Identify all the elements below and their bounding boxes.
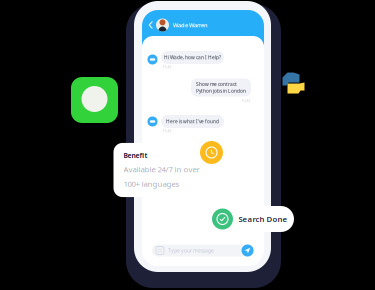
staticText: Show me contract Python jobs in London [196, 81, 246, 94]
staticText: Wade Warren [173, 21, 208, 29]
staticText: Search Done [238, 214, 287, 224]
staticText: 15:42 [162, 129, 171, 133]
button[interactable]: Send [241, 244, 253, 256]
staticText: Type your message [168, 247, 214, 254]
button[interactable]: Search Done [209, 206, 294, 232]
staticText: Here is what I've found [166, 118, 219, 125]
staticText: 15:42 [162, 65, 171, 69]
button[interactable]: Back [147, 20, 155, 30]
staticText: 15:42 [241, 98, 250, 103]
staticText: Benefit [123, 151, 147, 160]
staticText: 100+ languages [123, 178, 179, 189]
staticText: Available 24/7 in over [123, 164, 199, 174]
staticText: Hi Wade, how can I Help? [164, 54, 221, 61]
button[interactable]: Messages [71, 77, 118, 123]
button[interactable]: Recent [198, 139, 225, 166]
